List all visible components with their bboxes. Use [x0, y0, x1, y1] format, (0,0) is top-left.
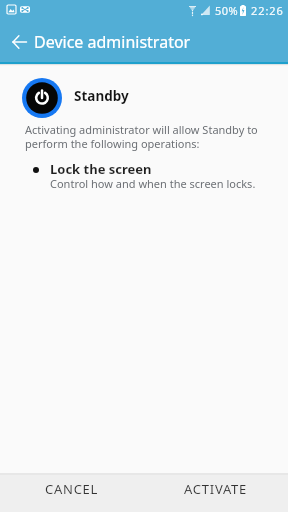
- staticText: Standby: [74, 87, 129, 105]
- button[interactable]: CANCEL: [0, 475, 144, 512]
- staticText: Device administrator: [34, 31, 191, 53]
- button[interactable]: Back: [0, 24, 34, 59]
- staticText: CANCEL: [45, 480, 99, 498]
- staticText: Control how and when the screen locks.: [50, 176, 256, 191]
- staticText: ACTIVATE: [184, 480, 248, 498]
- button[interactable]: ACTIVATE: [144, 475, 288, 512]
- staticText: 50%: [215, 3, 238, 18]
- staticText: 22:26: [251, 3, 284, 18]
- staticText: Lock the screen: [50, 160, 152, 178]
- staticText: Activating administrator will allow Stan…: [25, 122, 266, 151]
